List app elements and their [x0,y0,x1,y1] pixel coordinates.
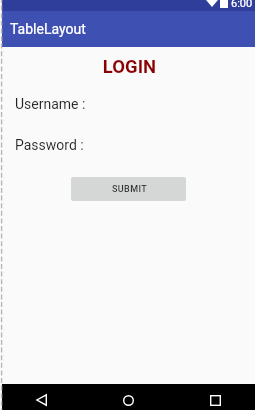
staticText: LOGIN [3,56,255,78]
button[interactable]: SUBMIT [71,177,186,201]
button[interactable]: Home [111,388,145,410]
staticText: 6:00 [231,0,253,8]
button[interactable]: Recent apps [198,388,232,410]
staticText: TableLayout [10,21,86,37]
staticText: Password : [15,137,84,153]
staticText: SUBMIT [112,184,148,195]
staticText: Username : [15,96,86,112]
button[interactable]: Back [24,388,58,410]
